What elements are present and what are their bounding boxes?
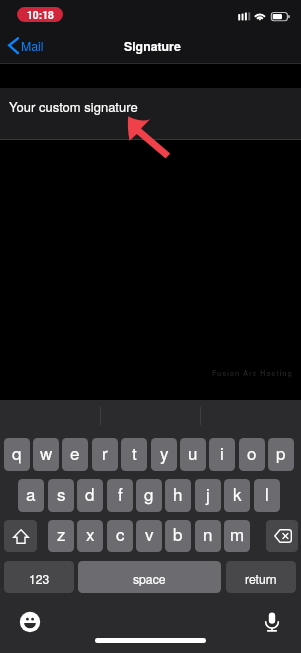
button[interactable]: w xyxy=(33,438,59,471)
button[interactable]: d xyxy=(77,479,103,512)
button[interactable]: h xyxy=(165,479,191,512)
button[interactable]: m xyxy=(224,520,250,552)
button[interactable]: 123 xyxy=(4,561,74,593)
button[interactable]: return xyxy=(226,561,296,593)
staticText: p xyxy=(276,440,286,464)
button[interactable]: y xyxy=(151,438,177,471)
button[interactable]: g xyxy=(136,479,162,512)
staticText: Fusion Arc Hosting xyxy=(212,368,293,378)
staticText: l xyxy=(265,481,269,505)
staticText: Signature xyxy=(124,37,181,55)
staticText: v xyxy=(145,521,154,545)
staticText: a xyxy=(26,481,36,505)
button[interactable]: space xyxy=(78,561,221,593)
staticText: space xyxy=(133,570,166,587)
staticText: k xyxy=(233,481,242,505)
button[interactable]: z xyxy=(48,520,74,552)
staticText: n xyxy=(203,521,213,545)
button[interactable]: Dictate xyxy=(261,611,283,633)
staticText: s xyxy=(57,481,66,505)
button[interactable]: Your custom signature xyxy=(0,88,301,139)
staticText: Mail xyxy=(21,37,44,55)
staticText: e xyxy=(70,440,80,464)
button[interactable]: s xyxy=(48,479,74,512)
button[interactable]: a xyxy=(18,479,44,512)
button[interactable]: n xyxy=(195,520,221,552)
button[interactable]: Emoji keyboard xyxy=(19,611,41,633)
button[interactable]: c xyxy=(107,520,133,552)
staticText: 123 xyxy=(29,570,50,587)
staticText: 10:18 xyxy=(27,7,54,22)
staticText: y xyxy=(160,440,169,464)
staticText: u xyxy=(188,440,198,464)
staticText: d xyxy=(85,481,95,505)
staticText: z xyxy=(57,521,66,545)
staticText: j xyxy=(206,481,210,505)
staticText: r xyxy=(102,440,108,464)
button[interactable]: t xyxy=(121,438,147,471)
staticText: w xyxy=(40,440,53,464)
button[interactable]: x xyxy=(77,520,103,552)
button[interactable]: u xyxy=(180,438,206,471)
staticText: h xyxy=(173,481,183,505)
button[interactable]: e xyxy=(62,438,88,471)
staticText: f xyxy=(118,481,123,505)
staticText: b xyxy=(173,521,183,545)
staticText: t xyxy=(132,440,137,464)
staticText: i xyxy=(220,440,224,464)
button[interactable]: Shift xyxy=(4,520,37,552)
button[interactable]: f xyxy=(107,479,133,512)
staticText: g xyxy=(144,481,154,505)
staticText: return xyxy=(245,570,277,587)
button[interactable]: b xyxy=(165,520,191,552)
staticText: q xyxy=(12,440,22,464)
button[interactable]: r xyxy=(92,438,118,471)
staticText: o xyxy=(247,440,257,464)
button[interactable]: i xyxy=(209,438,235,471)
button[interactable]: v xyxy=(136,520,162,552)
button[interactable]: Backspace xyxy=(266,520,298,552)
button[interactable]: k xyxy=(224,479,250,512)
staticText: Your custom signature xyxy=(9,97,138,116)
staticText: c xyxy=(116,521,125,545)
button[interactable]: Mail xyxy=(5,34,50,60)
button[interactable]: q xyxy=(4,438,30,471)
button[interactable]: j xyxy=(195,479,221,512)
button[interactable]: o xyxy=(239,438,265,471)
button[interactable]: l xyxy=(254,479,280,512)
staticText: m xyxy=(230,521,245,545)
staticText: x xyxy=(86,521,95,545)
button[interactable]: p xyxy=(268,438,294,471)
